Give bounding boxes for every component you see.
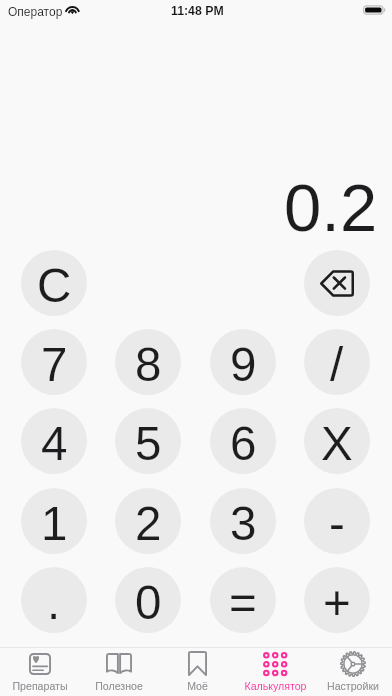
button[interactable]: 8 xyxy=(115,329,181,395)
staticText: 8 xyxy=(135,338,162,391)
staticText: 3 xyxy=(230,497,257,550)
staticText: Препараты xyxy=(12,680,68,692)
staticText: Калькулятор xyxy=(244,680,307,692)
button[interactable]: - xyxy=(304,488,370,554)
button[interactable]: 1 xyxy=(21,488,87,554)
staticText: 2 xyxy=(135,497,162,550)
staticText: - xyxy=(329,497,345,550)
staticText: / xyxy=(330,338,344,391)
staticText: 6 xyxy=(230,417,257,470)
button[interactable]: X xyxy=(304,408,370,474)
button[interactable]: Препараты xyxy=(0,648,79,696)
button[interactable]: 0 xyxy=(115,567,181,633)
staticText: . xyxy=(47,576,61,629)
staticText: + xyxy=(323,576,351,629)
button[interactable]: Настройки xyxy=(314,648,392,696)
button[interactable]: 3 xyxy=(210,488,276,554)
button[interactable]: 7 xyxy=(21,329,87,395)
staticText: X xyxy=(321,417,353,470)
button[interactable]: 6 xyxy=(210,408,276,474)
staticText: 7 xyxy=(41,338,68,391)
staticText: Полезное xyxy=(95,680,143,692)
staticText: = xyxy=(229,576,257,629)
staticText: 9 xyxy=(230,338,257,391)
staticText: Настройки xyxy=(327,680,379,692)
staticText: C xyxy=(37,259,72,312)
staticText: 5 xyxy=(135,417,162,470)
button[interactable]: Backspace xyxy=(304,250,370,316)
staticText: 0 xyxy=(135,576,162,629)
button[interactable]: = xyxy=(210,567,276,633)
button[interactable]: / xyxy=(304,329,370,395)
button[interactable]: + xyxy=(304,567,370,633)
staticText: 4 xyxy=(41,417,68,470)
button[interactable]: 9 xyxy=(210,329,276,395)
button[interactable]: Моё xyxy=(158,648,236,696)
staticText: Оператор xyxy=(8,5,63,18)
button[interactable]: 5 xyxy=(115,408,181,474)
staticText: Моё xyxy=(187,680,208,692)
button[interactable]: 2 xyxy=(115,488,181,554)
button[interactable]: Clear xyxy=(21,250,87,316)
staticText: 1 xyxy=(41,497,68,550)
button[interactable]: . xyxy=(21,567,87,633)
staticText: 11:48 PM xyxy=(171,4,224,18)
button[interactable]: Полезное xyxy=(79,648,158,696)
button[interactable]: 4 xyxy=(21,408,87,474)
staticText: 0.2 xyxy=(284,170,378,234)
button[interactable]: Калькулятор xyxy=(236,648,314,696)
